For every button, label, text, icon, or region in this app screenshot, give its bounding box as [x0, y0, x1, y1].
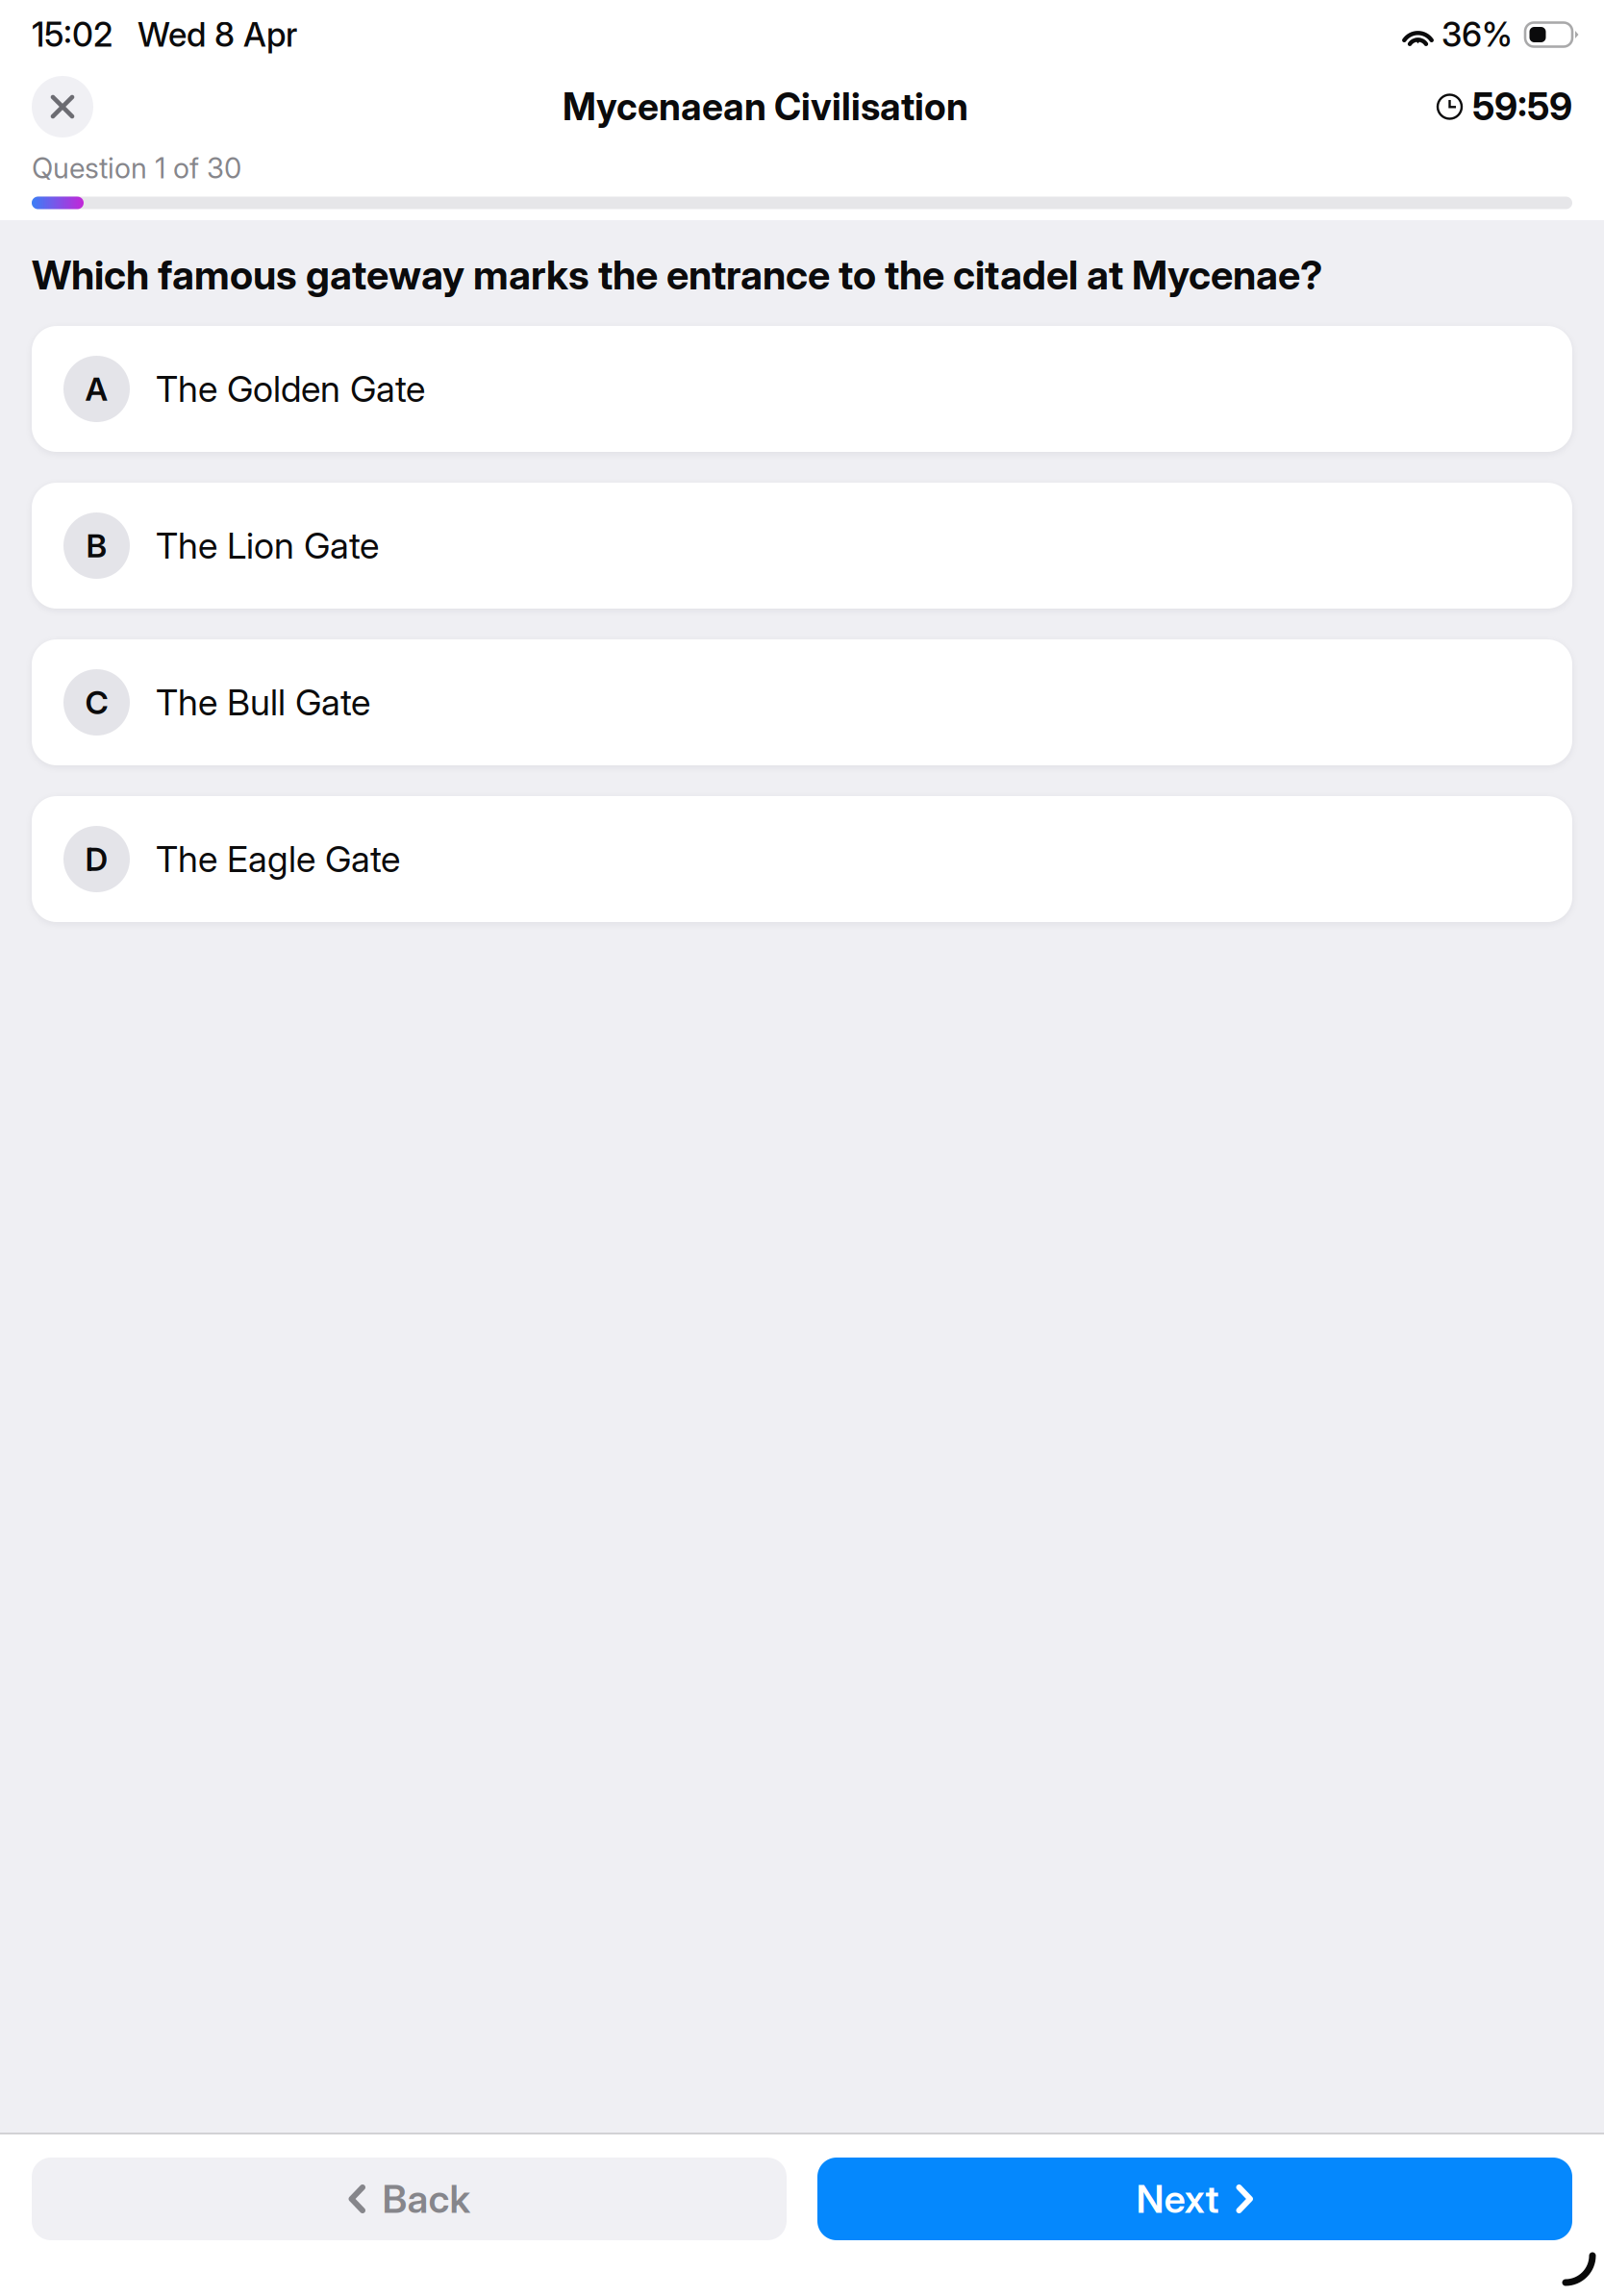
staticText: Mycenaean Civilisation: [563, 84, 968, 129]
button[interactable]: Close quiz: [32, 76, 93, 137]
staticText: The Bull Gate: [156, 681, 370, 724]
staticText: Which famous gateway marks the entrance …: [32, 251, 1322, 299]
staticText: Back: [382, 2176, 471, 2222]
button[interactable]: Next: [817, 2158, 1572, 2240]
staticText: 59:59: [1472, 84, 1572, 129]
staticText: The Eagle Gate: [156, 837, 400, 881]
staticText: D: [85, 840, 108, 878]
staticText: 15:02: [32, 14, 113, 55]
button[interactable]: A: [32, 326, 1572, 452]
staticText: Next: [1136, 2176, 1219, 2222]
staticText: The Golden Gate: [156, 367, 425, 411]
staticText: Wed 8 Apr: [138, 14, 297, 55]
staticText: 36%: [1441, 14, 1513, 55]
button[interactable]: C: [32, 639, 1572, 765]
staticText: B: [86, 526, 107, 565]
staticText: The Lion Gate: [156, 524, 379, 567]
staticText: Question 1 of 30: [32, 151, 241, 185]
button[interactable]: B: [32, 483, 1572, 609]
button[interactable]: D: [32, 796, 1572, 922]
staticText: A: [85, 369, 108, 408]
button[interactable]: Back: [32, 2158, 787, 2240]
staticText: C: [85, 683, 108, 722]
